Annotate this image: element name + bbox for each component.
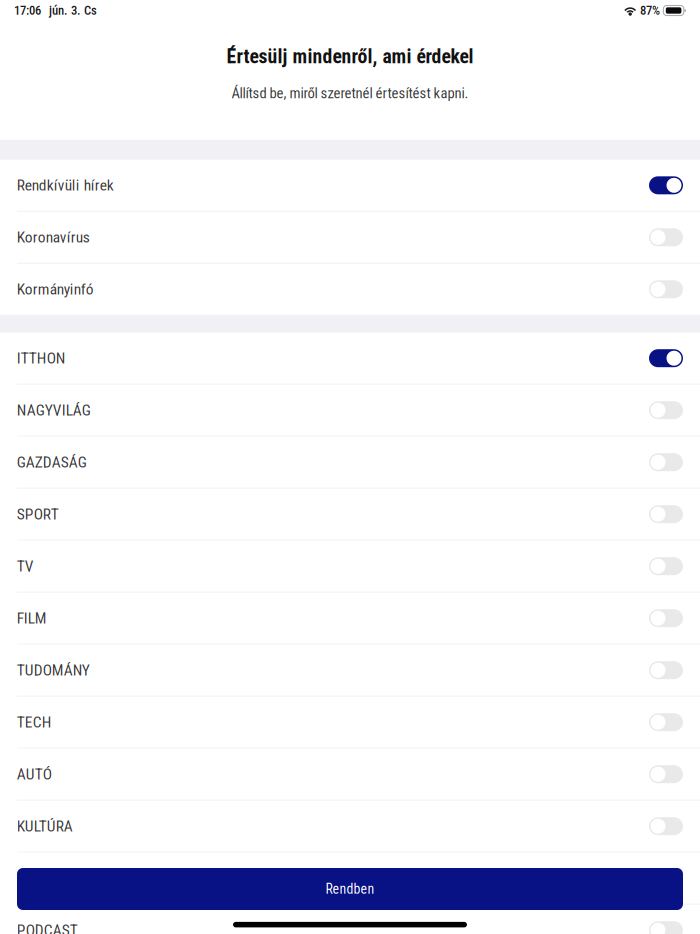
staticText: Értesülj mindenről, ami érdekel (226, 45, 473, 68)
staticText: AUTÓ (17, 765, 52, 783)
staticText: PODCAST (17, 921, 78, 934)
button[interactable]: TECH (0, 697, 700, 748)
staticText: TV (17, 557, 34, 575)
button[interactable]: PODCAST (0, 905, 700, 934)
button[interactable]: Rendben (17, 868, 683, 910)
button[interactable]: ITTHON (0, 333, 700, 384)
button[interactable]: SPORT (0, 489, 700, 540)
staticText: Koronavírus (17, 228, 90, 246)
button[interactable]: Rendkívüli hírek (0, 160, 700, 211)
staticText: KULTÚRA (17, 817, 73, 835)
staticText: Rendkívüli hírek (17, 176, 114, 194)
staticText: jún. 3. Cs (49, 3, 97, 18)
staticText: TECH (17, 713, 52, 731)
button[interactable]: FILM (0, 593, 700, 644)
button[interactable]: Koronavírus (0, 212, 700, 263)
button[interactable]: TUDOMÁNY (0, 645, 700, 696)
button[interactable]: GAZDASÁG (0, 437, 700, 488)
button[interactable]: AUTÓ (0, 749, 700, 800)
staticText: ITTHON (17, 349, 66, 367)
button[interactable]: Kormányinfó (0, 264, 700, 315)
staticText: GAZDASÁG (17, 453, 87, 471)
button[interactable]: KULTÚRA (0, 801, 700, 852)
button[interactable]: NAGYVILÁG (0, 385, 700, 436)
button[interactable]: TV (0, 541, 700, 592)
staticText: NAGYVILÁG (17, 401, 91, 419)
staticText: TUDOMÁNY (17, 661, 90, 679)
staticText: Kormányinfó (17, 280, 94, 298)
staticText: Állítsd be, miről szeretnél értesítést k… (231, 85, 468, 102)
staticText: SPORT (17, 505, 59, 523)
staticText: FILM (17, 609, 47, 627)
staticText: Rendben (325, 881, 374, 897)
staticText: ÉLETMÓD (17, 869, 78, 887)
staticText: 87% (640, 3, 660, 18)
button[interactable]: ÉLETMÓD (0, 853, 700, 904)
staticText: 17:06 (14, 3, 41, 18)
